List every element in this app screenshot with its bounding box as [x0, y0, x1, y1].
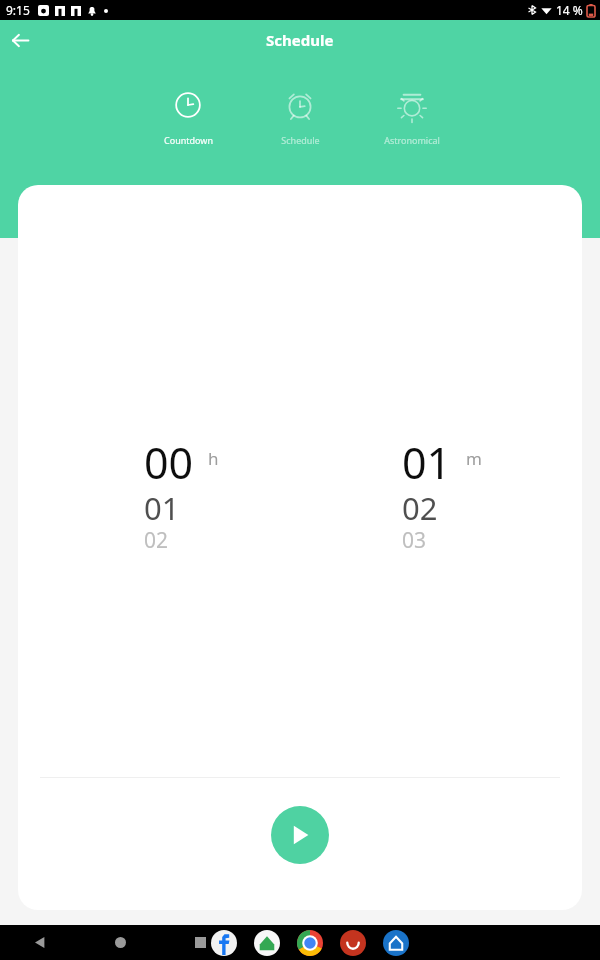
button[interactable]: Back: [0, 20, 40, 60]
button[interactable]: Start timer: [271, 806, 329, 864]
staticText: 14 %: [556, 2, 583, 18]
button[interactable]: Chrome: [297, 930, 323, 956]
staticText: 01: [144, 487, 180, 529]
staticText: 02: [402, 487, 438, 529]
staticText: 9:15: [6, 2, 30, 18]
staticText: 03: [402, 526, 427, 555]
staticText: Schedule: [266, 30, 334, 50]
staticText: m: [466, 447, 482, 470]
staticText: Countdown: [164, 134, 213, 146]
button[interactable]: Google Home: [254, 930, 280, 956]
button[interactable]: Smart Home: [383, 930, 409, 956]
staticText: Astronomical: [384, 134, 440, 146]
button[interactable]: 00: [144, 433, 219, 563]
staticText: 01: [402, 433, 452, 492]
staticText: 00: [144, 433, 194, 492]
button[interactable]: Facebook: [211, 930, 237, 956]
button[interactable]: 01: [402, 433, 482, 563]
button[interactable]: AliExpress: [340, 930, 366, 956]
staticText: h: [208, 447, 219, 470]
button[interactable]: Recents: [160, 925, 240, 960]
button[interactable]: Schedule: [244, 88, 356, 146]
button[interactable]: Back: [0, 925, 80, 960]
staticText: Schedule: [281, 134, 320, 146]
staticText: 02: [144, 526, 169, 555]
button[interactable]: Home: [80, 925, 160, 960]
button[interactable]: Astronomical: [356, 88, 468, 146]
button[interactable]: Countdown: [132, 88, 244, 146]
